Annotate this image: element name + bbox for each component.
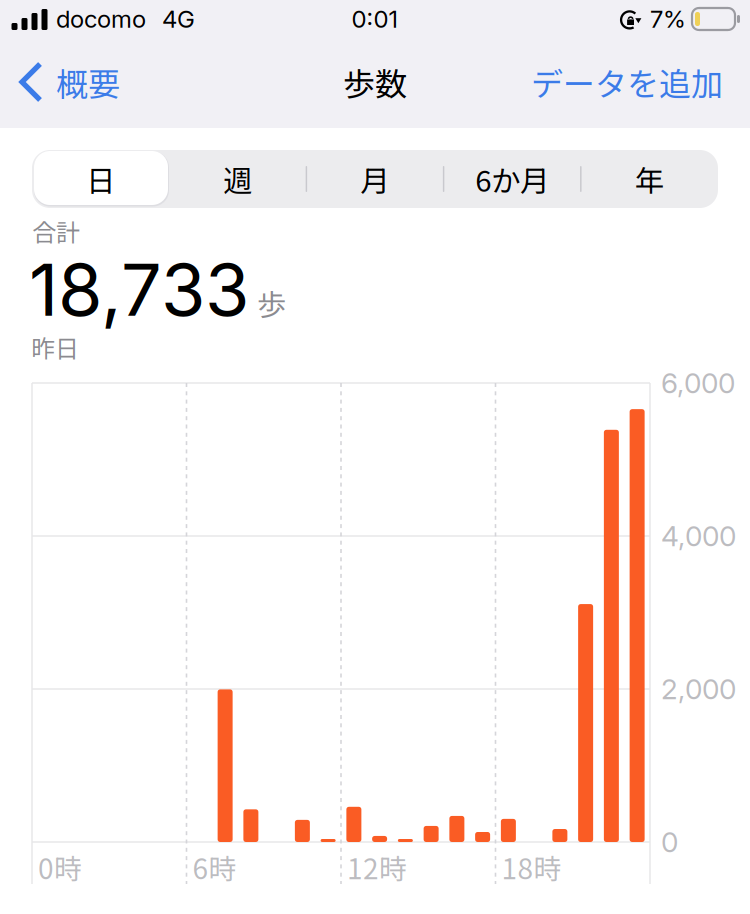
staticText: 6時 [192,847,236,887]
staticText: 6,000 [661,366,735,400]
button[interactable]: データを追加 [516,43,750,121]
staticText: docomo [56,4,146,33]
staticText: 0時 [38,847,82,887]
staticText: 週 [223,158,252,200]
staticText: 4,000 [661,519,736,553]
button[interactable]: 年 [581,150,718,208]
staticText: データを追加 [531,59,723,105]
staticText: 歩数 [343,59,407,105]
staticText: 0:01 [351,4,398,33]
staticText: 昨日 [31,330,79,364]
staticText: 18時 [501,847,561,887]
staticText: 18,733 [29,246,249,333]
button[interactable]: 6か月 [444,150,581,208]
staticText: 歩 [257,281,286,324]
button[interactable]: 概要 [0,43,134,121]
staticText: 6か月 [475,158,549,200]
button[interactable]: 週 [169,150,306,208]
button[interactable]: 月 [306,150,444,208]
staticText: 12時 [347,847,407,887]
staticText: 0 [661,825,678,859]
staticText: 年 [635,158,664,200]
staticText: 月 [360,158,389,200]
staticText: 日 [86,158,115,200]
staticText: 2,000 [661,672,736,706]
staticText: 合計 [32,214,80,248]
staticText: 4G [162,4,195,33]
button[interactable]: 日 [32,150,169,208]
staticText: 概要 [56,59,120,105]
staticText: 7% [650,4,686,33]
